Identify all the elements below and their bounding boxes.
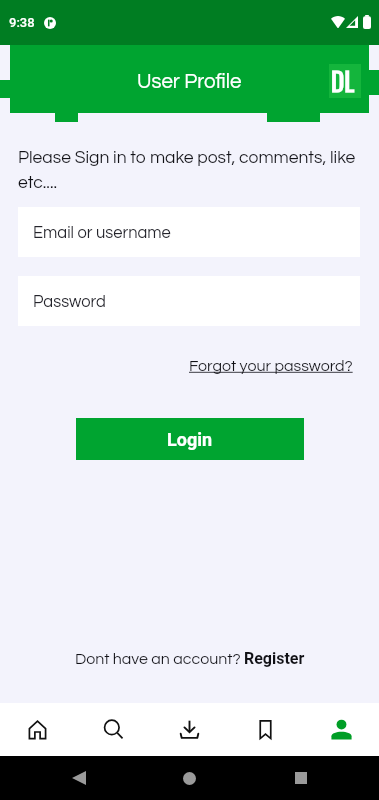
button[interactable]: Home [0, 703, 75, 756]
button[interactable]: App logo [329, 64, 361, 98]
button[interactable]: Downloads [151, 703, 227, 756]
button[interactable]: Login [76, 418, 304, 460]
staticText: Login [167, 429, 213, 450]
staticText: Password [33, 293, 106, 310]
button[interactable]: Profile [303, 703, 379, 756]
button[interactable]: Bookmarks [227, 703, 303, 756]
staticText: 9:38 [9, 15, 35, 30]
button[interactable]: Email or username [18, 207, 360, 257]
staticText: DL [331, 62, 355, 96]
staticText: Email or username [33, 224, 171, 241]
staticText: Please Sign in to make post, comments, l… [18, 149, 363, 192]
button[interactable]: Forgot your password? [189, 356, 353, 376]
staticText: User Profile [137, 71, 242, 92]
button[interactable]: Password [18, 276, 360, 326]
button[interactable]: Dont have an account? Register [75, 649, 305, 668]
button[interactable]: Search [75, 703, 151, 756]
